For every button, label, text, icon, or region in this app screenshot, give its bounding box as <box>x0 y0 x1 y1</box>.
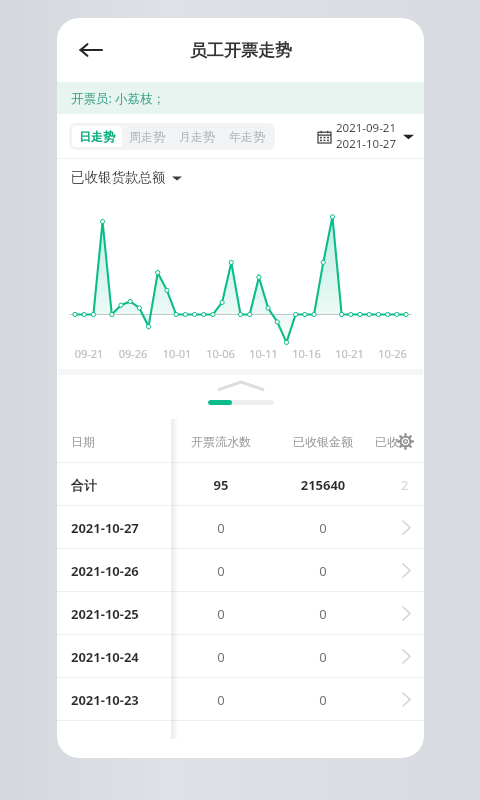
staticText: 0 <box>271 648 375 666</box>
staticText: 0 <box>171 605 271 623</box>
staticText: 95 <box>171 476 271 494</box>
staticText: 开票流水数 <box>171 434 271 449</box>
staticText: 开票员: 小荔枝； <box>71 90 166 107</box>
staticText: 员工开票走势 <box>190 40 292 61</box>
button[interactable]: 2021-10-24 <box>57 635 424 678</box>
staticText: 10-06 <box>199 346 242 361</box>
staticText: 0 <box>171 519 271 537</box>
button[interactable]: 合计 <box>57 463 424 506</box>
staticText: 2021-10-26 <box>71 562 171 580</box>
staticText: 10-21 <box>328 346 371 361</box>
button[interactable]: 已收银货款总额 <box>71 169 182 186</box>
staticText: 2021-10-24 <box>71 648 171 666</box>
button[interactable]: 周走势 <box>122 126 172 147</box>
button[interactable]: 2021-09-21 <box>318 120 414 152</box>
staticText: 10-01 <box>155 346 199 361</box>
button[interactable]: 2021-10-27 <box>57 506 424 549</box>
staticText: 09-21 <box>67 346 111 361</box>
button[interactable]: 日走势 <box>72 126 122 147</box>
staticText: 2021-10-27 <box>71 519 171 537</box>
button[interactable]: 2021-10-26 <box>57 549 424 592</box>
staticText: 2021-10-25 <box>71 605 171 623</box>
staticText: 0 <box>271 605 375 623</box>
button[interactable]: 年走势 <box>222 126 272 147</box>
staticText: 215640 <box>271 476 375 494</box>
staticText: 2021-10-23 <box>71 691 171 709</box>
button[interactable]: Back <box>69 28 113 72</box>
staticText: 0 <box>171 562 271 580</box>
button[interactable]: 月走势 <box>172 126 222 147</box>
button[interactable]: 2021-10-25 <box>57 592 424 635</box>
button[interactable]: Collapse chart <box>219 381 263 391</box>
staticText: 已收银货款总额 <box>71 169 166 186</box>
staticText: 10-16 <box>285 346 328 361</box>
staticText: 周走势 <box>129 129 165 144</box>
staticText: 09-26 <box>111 346 155 361</box>
staticText: 日期 <box>71 434 171 449</box>
staticText: 日走势 <box>79 129 115 144</box>
staticText: 10-26 <box>371 346 414 361</box>
staticText: 年走势 <box>229 129 265 144</box>
staticText: 合计 <box>71 477 171 493</box>
staticText: 2 <box>401 476 409 494</box>
staticText: 0 <box>171 691 271 709</box>
staticText: 0 <box>171 648 271 666</box>
staticText: 10-11 <box>242 346 285 361</box>
button[interactable]: 2021-10-23 <box>57 678 424 721</box>
staticText: 0 <box>271 562 375 580</box>
staticText: 0 <box>271 519 375 537</box>
button[interactable]: Column settings <box>394 430 416 452</box>
staticText: 2021-09-21 <box>336 120 397 136</box>
button[interactable]: 开票员: 小荔枝； <box>57 82 424 114</box>
staticText: 2021-10-27 <box>336 136 397 152</box>
staticText: 已收 <box>375 434 399 449</box>
staticText: 月走势 <box>179 129 215 144</box>
staticText: 0 <box>271 691 375 709</box>
staticText: 已收银金额 <box>271 434 375 449</box>
